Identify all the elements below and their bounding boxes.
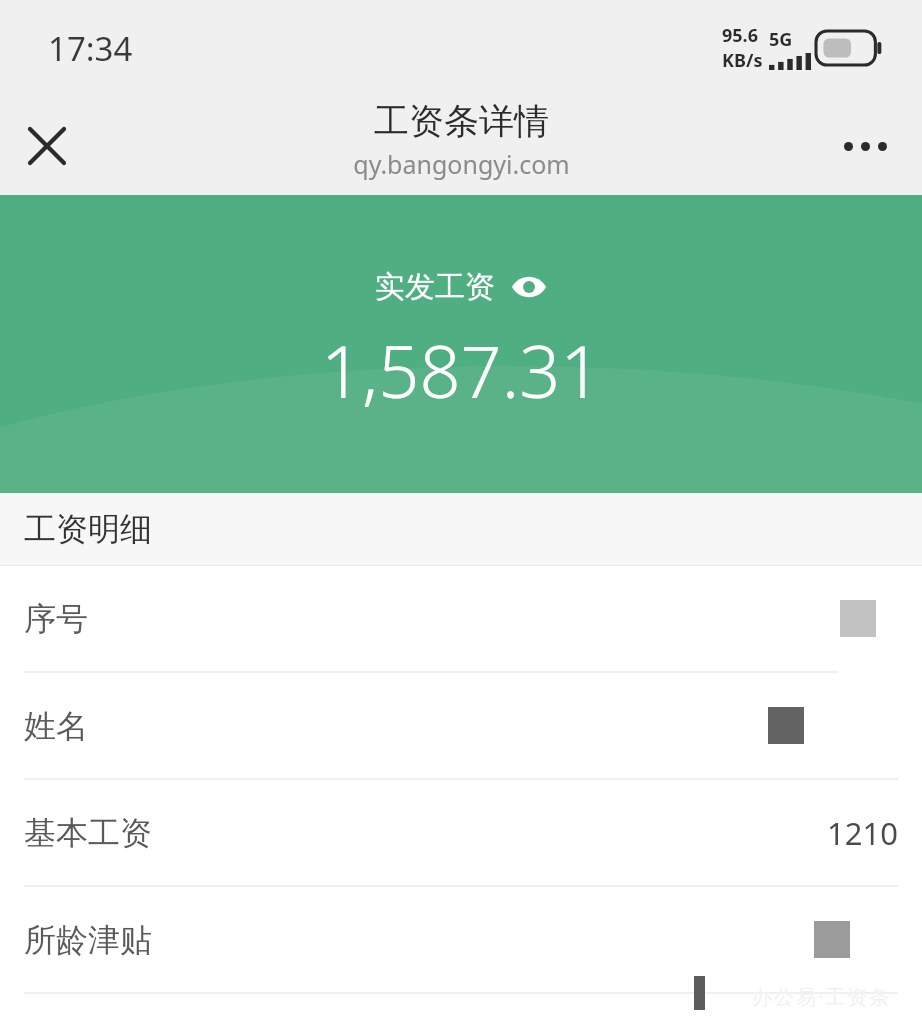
staticText: 17:34 <box>48 26 133 71</box>
button[interactable]: More options <box>830 111 900 181</box>
staticText: 基本工资 <box>24 813 152 853</box>
button[interactable]: 所龄津贴 <box>0 887 922 992</box>
staticText: qy.bangongyi.com <box>353 147 570 181</box>
staticText: 工资条详情 <box>374 99 549 143</box>
button[interactable]: 基本工资 <box>0 780 922 885</box>
button[interactable]: Close <box>16 115 78 177</box>
staticText: 所龄津贴 <box>24 920 152 960</box>
staticText: 5G <box>769 27 793 52</box>
staticText: 工资明细 <box>24 509 152 549</box>
staticText: 1,587.31 <box>321 321 602 419</box>
staticText: 办公易·工资条 <box>752 983 892 1010</box>
button[interactable]: 姓名 <box>0 673 922 778</box>
staticText: 95.6 <box>722 23 758 48</box>
staticText: 1210 <box>827 812 898 854</box>
staticText: 实发工资 <box>375 268 495 306</box>
button[interactable]: 序号 <box>0 566 922 671</box>
button[interactable]: Toggle salary visibility <box>509 267 549 307</box>
staticText: KB/s <box>722 48 763 73</box>
staticText: 序号 <box>24 599 88 639</box>
staticText: 姓名 <box>24 706 88 746</box>
